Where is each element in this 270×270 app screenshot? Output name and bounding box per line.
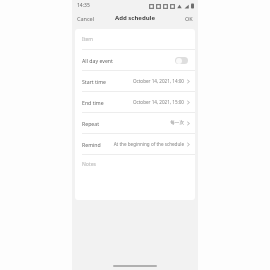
button[interactable]: Repeat <box>75 113 195 133</box>
staticText: Add schedule <box>115 14 155 22</box>
button[interactable]: All day event <box>75 50 195 70</box>
staticText: All day event <box>82 57 113 64</box>
staticText: Repeat <box>82 120 100 127</box>
button[interactable]: Notes <box>75 155 195 200</box>
staticText: 14:35 <box>77 2 90 9</box>
staticText: October 14, 2021, 14:00 <box>132 78 184 84</box>
staticText: Notes <box>82 161 96 168</box>
staticText: Cancel <box>77 15 95 22</box>
staticText: October 14, 2021, 15:00 <box>132 99 184 105</box>
staticText: Remind <box>82 141 101 148</box>
staticText: Start time <box>82 78 106 85</box>
staticText: 每一次 <box>170 120 184 126</box>
staticText: OK <box>185 15 193 22</box>
staticText: End time <box>82 99 104 106</box>
button[interactable]: All day event toggle <box>175 57 188 64</box>
button[interactable]: Item <box>75 29 195 49</box>
button[interactable]: End time <box>75 92 195 112</box>
button[interactable]: Remind <box>75 134 195 154</box>
button[interactable]: Cancel <box>72 13 100 24</box>
button[interactable]: OK <box>180 13 198 24</box>
staticText: Item <box>82 36 93 43</box>
button[interactable]: Start time <box>75 71 195 91</box>
staticText: At the beginning of the schedule <box>113 141 184 147</box>
